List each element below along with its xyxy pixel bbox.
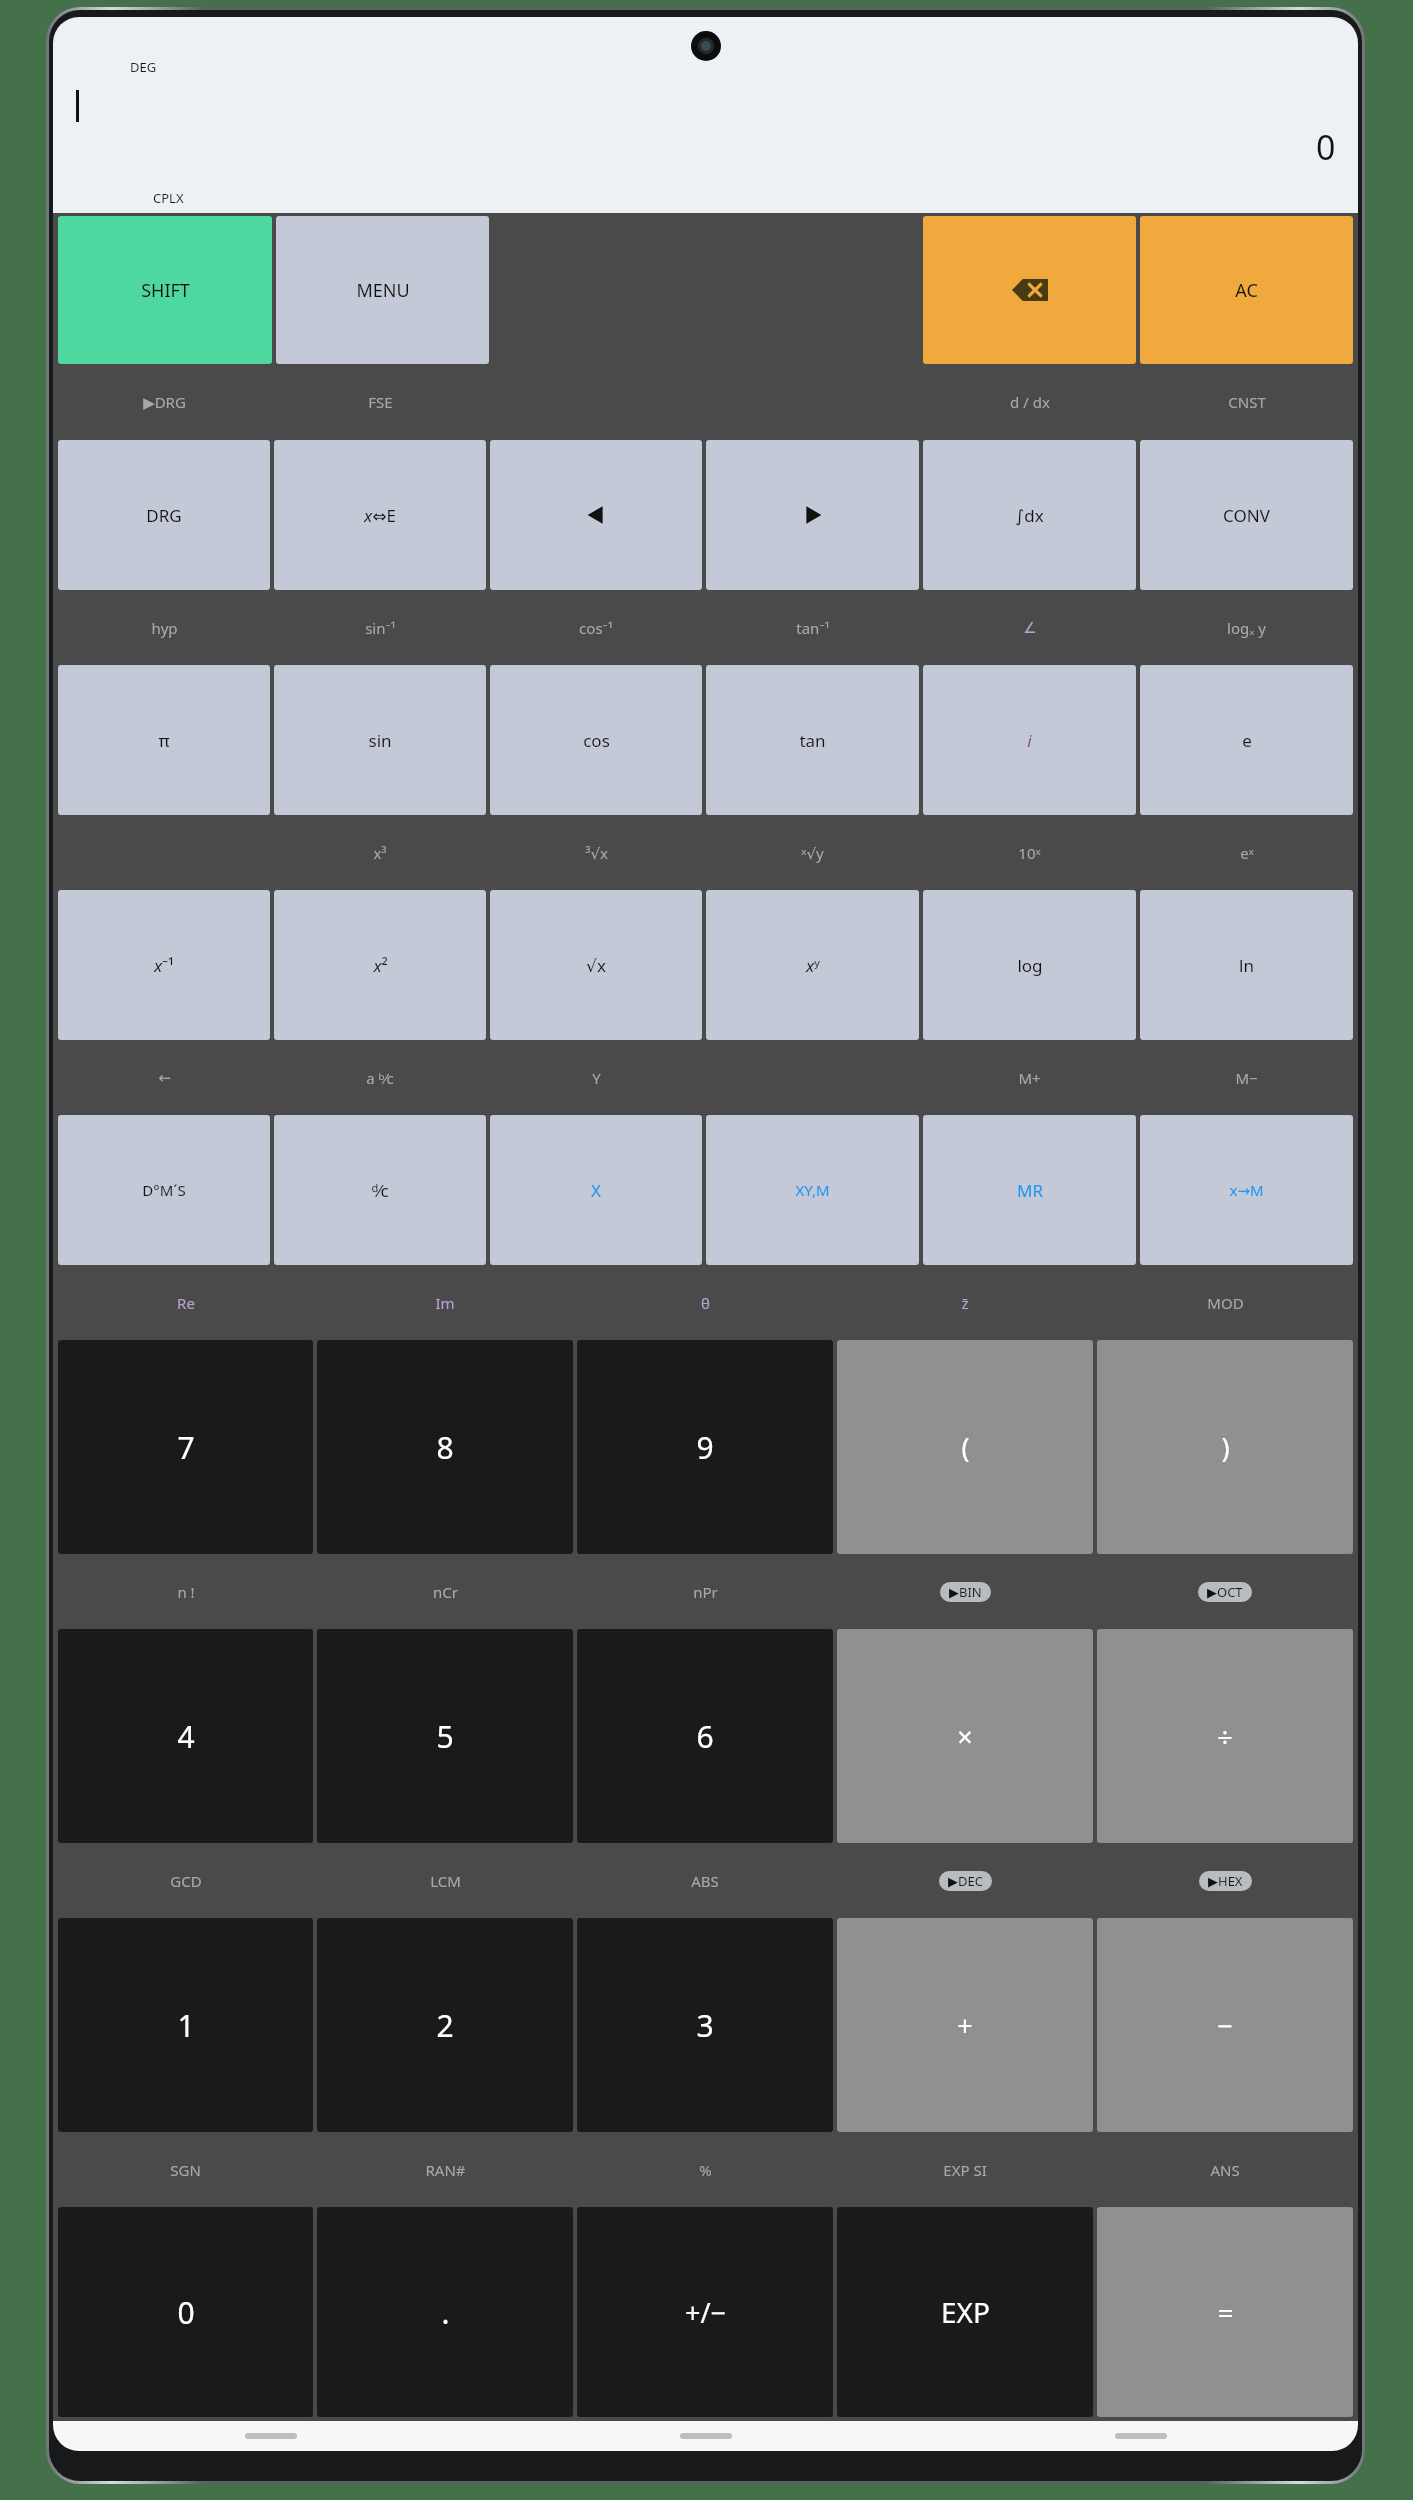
- button[interactable]: Re: [177, 1293, 195, 1313]
- button[interactable]: ᵈ⁄c: [274, 1115, 486, 1265]
- button[interactable]: x²: [274, 890, 486, 1040]
- button[interactable]: ln: [1140, 890, 1353, 1040]
- button[interactable]: d / dx: [1010, 392, 1050, 412]
- button[interactable]: θ: [701, 1293, 710, 1313]
- staticText: sin: [368, 729, 392, 752]
- button[interactable]: +/−: [577, 2207, 833, 2417]
- button[interactable]: nPr: [693, 1582, 718, 1602]
- button[interactable]: 2: [317, 1918, 573, 2132]
- button[interactable]: x→M: [1140, 1115, 1353, 1265]
- button[interactable]: GCD: [170, 1871, 202, 1891]
- button[interactable]: cos⁻¹: [579, 618, 613, 638]
- button[interactable]: %: [699, 2160, 712, 2180]
- button[interactable]: 7: [58, 1340, 313, 1554]
- button[interactable]: z̄: [961, 1293, 969, 1313]
- button[interactable]: Back: [923, 2421, 1358, 2451]
- button[interactable]: sin⁻¹: [365, 618, 396, 638]
- button[interactable]: M−: [1235, 1068, 1258, 1088]
- button[interactable]: e: [1140, 665, 1353, 815]
- button[interactable]: D°M´S: [58, 1115, 270, 1265]
- button[interactable]: xʸ: [706, 890, 919, 1040]
- staticText: +: [957, 2007, 973, 2044]
- button[interactable]: ▶HEX: [1208, 1872, 1243, 1890]
- button[interactable]: ∫dx: [923, 440, 1136, 590]
- staticText: xʸ: [806, 954, 820, 977]
- button[interactable]: ANS: [1210, 2160, 1240, 2180]
- button[interactable]: 0: [58, 2207, 313, 2417]
- button[interactable]: CNST: [1228, 392, 1266, 412]
- button[interactable]: 9: [577, 1340, 833, 1554]
- button[interactable]: n !: [177, 1582, 195, 1602]
- button[interactable]: nCr: [433, 1582, 458, 1602]
- button[interactable]: 10ˣ: [1018, 843, 1041, 863]
- button[interactable]: [490, 440, 702, 590]
- button[interactable]: ×: [837, 1629, 1093, 1843]
- button[interactable]: Backspace: [923, 216, 1136, 364]
- button[interactable]: Recents: [53, 2421, 488, 2451]
- button[interactable]: +: [837, 1918, 1093, 2132]
- button[interactable]: XY,M: [706, 1115, 919, 1265]
- button[interactable]: ▶OCT: [1207, 1583, 1243, 1601]
- button[interactable]: tan: [706, 665, 919, 815]
- button[interactable]: ▶DRG: [143, 392, 186, 412]
- button[interactable]: AC: [1140, 216, 1353, 364]
- button[interactable]: 4: [58, 1629, 313, 1843]
- button[interactable]: =: [1097, 2207, 1353, 2417]
- button[interactable]: 5: [317, 1629, 573, 1843]
- button[interactable]: log: [923, 890, 1136, 1040]
- button[interactable]: SHIFT: [58, 216, 272, 364]
- button[interactable]: ▶BIN: [949, 1583, 982, 1601]
- button[interactable]: ˣ√y: [801, 843, 824, 863]
- button[interactable]: LCM: [430, 1871, 461, 1891]
- button[interactable]: 6: [577, 1629, 833, 1843]
- button[interactable]: RAN#: [425, 2160, 466, 2180]
- button[interactable]: 3: [577, 1918, 833, 2132]
- button[interactable]: tan⁻¹: [796, 618, 830, 638]
- button[interactable]: √x: [490, 890, 702, 1040]
- staticText: x⁻¹: [154, 954, 174, 977]
- button[interactable]: FSE: [368, 392, 393, 412]
- button[interactable]: 8: [317, 1340, 573, 1554]
- button[interactable]: Im: [435, 1293, 455, 1313]
- button[interactable]: ←: [158, 1069, 171, 1086]
- button[interactable]: ³√x: [585, 843, 608, 863]
- button[interactable]: ÷: [1097, 1629, 1353, 1843]
- button[interactable]: a ᵇ⁄c: [366, 1068, 394, 1088]
- button[interactable]: CONV: [1140, 440, 1353, 590]
- button[interactable]: M+: [1018, 1068, 1041, 1088]
- button[interactable]: .: [317, 2207, 573, 2417]
- button[interactable]: Y: [592, 1068, 601, 1088]
- staticText: MR: [1017, 1179, 1043, 1202]
- button[interactable]: DRG: [58, 440, 270, 590]
- staticText: 9: [696, 1427, 714, 1468]
- button[interactable]: sin: [274, 665, 486, 815]
- staticText: ÷: [1217, 1718, 1233, 1755]
- button[interactable]: EXP: [837, 2207, 1093, 2417]
- button[interactable]: x⁻¹: [58, 890, 270, 1040]
- button[interactable]: [706, 440, 919, 590]
- button[interactable]: (: [837, 1340, 1093, 1554]
- button[interactable]: eˣ: [1240, 843, 1254, 863]
- button[interactable]: ▶DEC: [948, 1872, 983, 1890]
- button[interactable]: π: [58, 665, 270, 815]
- button[interactable]: hyp: [151, 618, 178, 638]
- staticText: MENU: [356, 278, 410, 303]
- button[interactable]: MOD: [1207, 1293, 1244, 1313]
- staticText: ∫dx: [1015, 504, 1044, 527]
- button[interactable]: EXP SI: [943, 2160, 987, 2180]
- button[interactable]: logₓ y: [1227, 618, 1266, 638]
- button[interactable]: x³: [373, 843, 387, 863]
- button[interactable]: ): [1097, 1340, 1353, 1554]
- button[interactable]: cos: [490, 665, 702, 815]
- button[interactable]: MENU: [276, 216, 489, 364]
- button[interactable]: 1: [58, 1918, 313, 2132]
- button[interactable]: x⇔E: [274, 440, 486, 590]
- button[interactable]: X: [490, 1115, 702, 1265]
- button[interactable]: ∠: [1023, 619, 1037, 636]
- button[interactable]: ABS: [691, 1871, 719, 1891]
- button[interactable]: Home: [488, 2421, 923, 2451]
- button[interactable]: SGN: [170, 2160, 201, 2180]
- button[interactable]: MR: [923, 1115, 1136, 1265]
